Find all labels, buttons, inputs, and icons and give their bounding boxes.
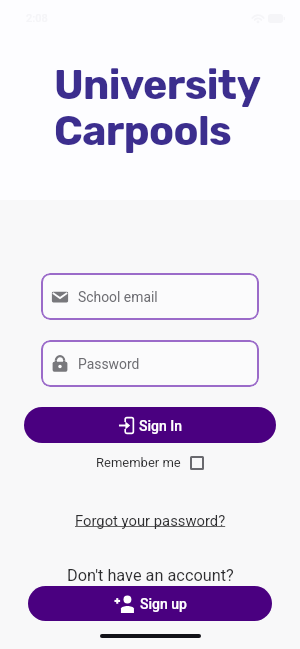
staticText: Sign In: [139, 418, 183, 434]
button[interactable]: Password: [41, 340, 259, 387]
staticText: School email: [78, 289, 158, 305]
button[interactable]: School email: [41, 273, 259, 320]
staticText: Don't have an account?: [67, 566, 234, 585]
button[interactable]: Forgot your password?: [71, 508, 230, 533]
staticText: Remember me: [96, 455, 181, 470]
staticText: Password: [78, 356, 140, 372]
staticText: University: [54, 61, 261, 110]
staticText: Carpools: [54, 107, 232, 156]
button[interactable]: Sign up: [28, 586, 272, 621]
staticText: Sign up: [140, 596, 187, 612]
staticText: 2:08: [26, 12, 48, 25]
button[interactable]: Sign In: [24, 407, 276, 443]
button[interactable]: Remember me: [92, 453, 208, 472]
